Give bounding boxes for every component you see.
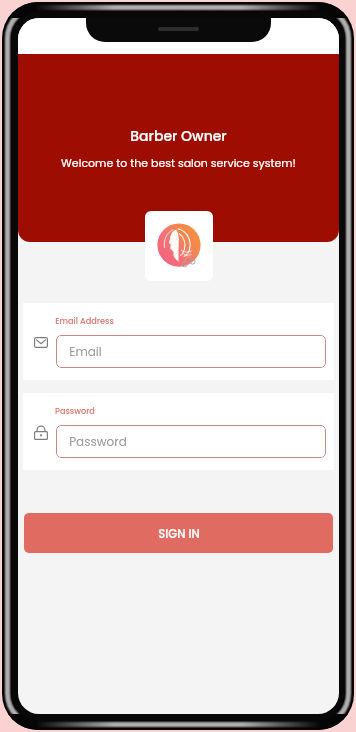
staticText: Email Address [55,315,114,326]
button[interactable]: Password [56,425,326,458]
other: Password [34,425,48,440]
staticText: Email [69,343,102,360]
staticText: Welcome to the best salon service system… [61,155,296,170]
button[interactable]: Email [56,335,326,368]
other: Barber Owner logo [155,222,203,270]
staticText: SIGN IN [158,526,200,542]
other: Email [34,337,48,348]
staticText: Password [69,433,127,450]
button[interactable]: SIGN IN [24,513,333,553]
staticText: Barber Owner [130,126,227,146]
staticText: Password [55,405,95,416]
